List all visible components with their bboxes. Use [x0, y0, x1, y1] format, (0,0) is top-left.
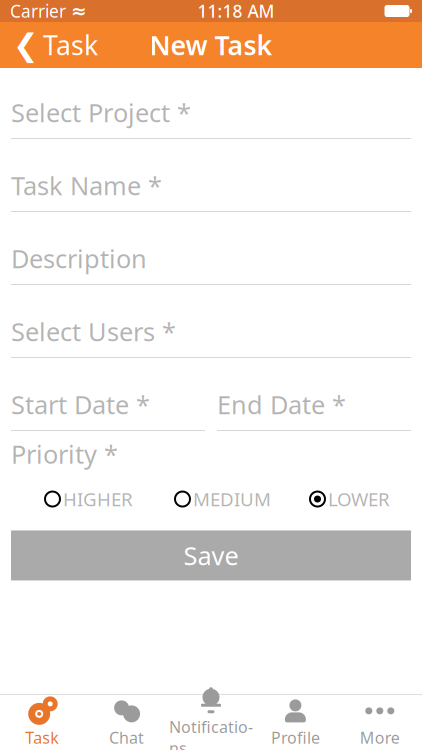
button[interactable]: Start Date * [11, 379, 205, 431]
button[interactable]: Chat [84, 697, 169, 747]
staticText: HIGHER [63, 487, 133, 511]
button[interactable]: Task Name * [11, 160, 411, 212]
staticText: ❮ [13, 28, 39, 62]
staticText: 11:18 AM [197, 0, 274, 22]
button[interactable]: Select Users * [11, 306, 411, 358]
staticText: Profile [271, 727, 320, 748]
staticText: End Date * [217, 388, 346, 421]
staticText: LOWER [328, 487, 390, 511]
staticText: Start Date * [11, 388, 150, 421]
staticText: Carrier [10, 0, 66, 22]
staticText: Save [183, 539, 238, 572]
staticText: MEDIUM [193, 487, 271, 511]
staticText: Select Users * [11, 315, 176, 348]
staticText: Notifications [169, 716, 253, 750]
button[interactable]: MEDIUM [174, 487, 271, 511]
button[interactable]: Profile [253, 697, 338, 747]
staticText: Task Name * [11, 169, 162, 202]
staticText: Task [25, 727, 59, 748]
staticText: ≈ [71, 0, 87, 22]
button[interactable]: LOWER [309, 487, 390, 511]
button[interactable]: More [338, 697, 422, 747]
staticText: Select Project * [11, 96, 191, 129]
button[interactable]: Task [0, 697, 84, 747]
button[interactable]: Description [11, 233, 411, 285]
button[interactable]: HIGHER [44, 487, 133, 511]
staticText: Chat [109, 727, 144, 748]
staticText: Description [11, 242, 147, 275]
button[interactable]: ❮ [0, 21, 98, 69]
staticText: Priority * [11, 437, 118, 471]
staticText: New Task [149, 27, 272, 63]
staticText: More [360, 727, 400, 748]
button[interactable]: Notifications [169, 697, 253, 747]
staticText: Task [43, 27, 98, 63]
button[interactable]: Select Project * [11, 87, 411, 139]
button[interactable]: Save [11, 530, 411, 580]
button[interactable]: End Date * [217, 379, 411, 431]
